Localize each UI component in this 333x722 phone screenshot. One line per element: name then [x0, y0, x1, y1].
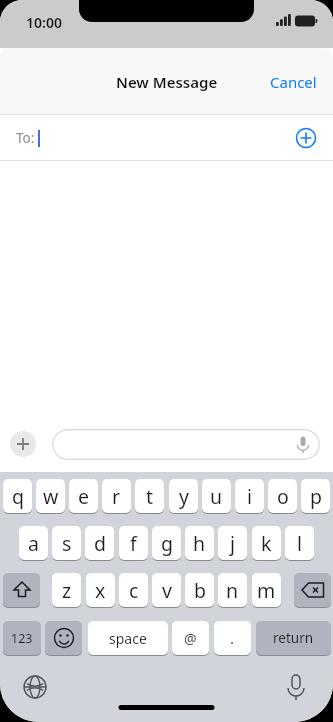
staticText: @ — [184, 629, 197, 648]
button[interactable]: @ — [172, 621, 209, 655]
button[interactable]: t — [135, 479, 164, 513]
staticText: c — [129, 577, 139, 604]
staticText: p — [310, 483, 322, 510]
button[interactable]: b — [185, 573, 214, 607]
button[interactable]: p — [301, 479, 330, 513]
button[interactable] — [10, 431, 36, 457]
staticText: f — [130, 530, 137, 557]
staticText: s — [62, 530, 72, 557]
staticText: z — [62, 577, 72, 604]
button[interactable]: d — [85, 526, 114, 560]
button[interactable] — [294, 573, 331, 607]
button[interactable]: m — [252, 573, 281, 607]
staticText: b — [194, 577, 206, 604]
staticText: To: — [16, 129, 35, 147]
button[interactable]: c — [119, 573, 148, 607]
button[interactable]: y — [169, 479, 198, 513]
staticText: a — [28, 530, 39, 557]
staticText: k — [261, 530, 272, 557]
staticText: 10:00 — [26, 13, 62, 32]
staticText: t — [146, 483, 154, 510]
staticText: New Message — [116, 72, 218, 92]
button[interactable]: To: — [0, 115, 333, 161]
button[interactable]: n — [218, 573, 247, 607]
button[interactable]: 123 — [3, 621, 41, 655]
button[interactable]: k — [252, 526, 281, 560]
staticText: r — [112, 483, 121, 510]
button[interactable]: Cancel — [262, 64, 325, 100]
button[interactable]: i — [235, 479, 264, 513]
staticText: . — [230, 628, 235, 648]
button[interactable]: j — [218, 526, 247, 560]
button[interactable]: z — [52, 573, 81, 607]
staticText: w — [43, 483, 59, 510]
staticText: space — [109, 629, 147, 648]
staticText: v — [162, 577, 172, 604]
button[interactable]: f — [119, 526, 148, 560]
button[interactable]: h — [185, 526, 214, 560]
button[interactable]: w — [36, 479, 65, 513]
button[interactable]: q — [3, 479, 32, 513]
staticText: o — [277, 483, 289, 510]
staticText: l — [297, 530, 303, 557]
button[interactable] — [52, 429, 320, 460]
button[interactable]: x — [86, 573, 115, 607]
staticText: j — [230, 530, 236, 557]
button[interactable]: g — [152, 526, 181, 560]
staticText: h — [193, 530, 206, 557]
button[interactable]: v — [152, 573, 181, 607]
button[interactable]: e — [69, 479, 98, 513]
staticText: x — [95, 577, 106, 604]
staticText: 123 — [11, 630, 33, 647]
staticText: q — [12, 483, 24, 510]
button[interactable]: u — [202, 479, 231, 513]
staticText: e — [78, 483, 89, 510]
staticText: m — [257, 577, 276, 604]
staticText: g — [161, 530, 173, 557]
staticText: i — [247, 483, 253, 510]
button[interactable]: a — [19, 526, 48, 560]
staticText: n — [226, 577, 239, 604]
button[interactable]: return — [256, 621, 331, 655]
button[interactable]: o — [268, 479, 297, 513]
button[interactable]: l — [285, 526, 314, 560]
button[interactable] — [45, 621, 82, 655]
button[interactable]: space — [88, 621, 168, 655]
button[interactable] — [3, 573, 40, 607]
button[interactable]: . — [214, 621, 251, 655]
staticText: Cancel — [270, 72, 317, 92]
staticText: return — [273, 629, 314, 647]
button[interactable]: r — [102, 479, 131, 513]
button[interactable]: s — [52, 526, 81, 560]
staticText: y — [179, 483, 189, 510]
staticText: u — [210, 483, 223, 510]
button[interactable] — [295, 127, 317, 149]
staticText: d — [94, 530, 106, 557]
